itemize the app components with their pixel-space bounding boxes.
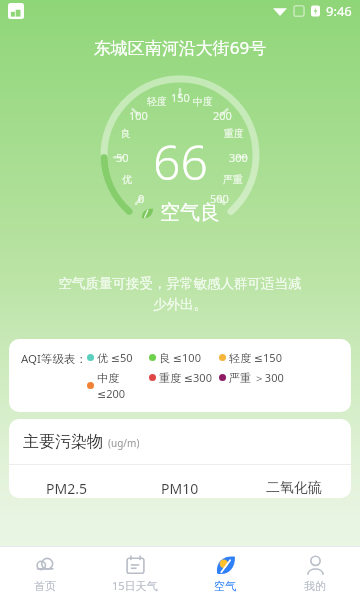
button[interactable]: 我的 — [270, 547, 360, 600]
staticText: PM2.5 — [46, 479, 87, 498]
staticText: 良 — [121, 127, 131, 140]
staticText: 空气良 — [160, 200, 220, 225]
staticText: 严重 — [223, 173, 243, 186]
staticText: 500 — [210, 191, 229, 206]
staticText: 首页 — [34, 579, 56, 593]
staticText: 0 — [138, 191, 145, 206]
staticText: 空气质量可接受，异常敏感人群可适当减 少外出。 — [24, 275, 336, 313]
button[interactable]: 主要污染物 — [9, 419, 351, 498]
button[interactable]: 首页 — [0, 547, 90, 600]
staticText: PM10 — [161, 479, 199, 498]
staticText: 二氧化硫 — [266, 479, 322, 497]
staticText: 300 — [229, 150, 248, 165]
staticText: AQI等级表： — [21, 351, 87, 367]
staticText: 轻度 — [147, 95, 167, 108]
staticText: 轻度 ≤150 — [229, 350, 282, 365]
button[interactable]: 空气 — [180, 547, 270, 600]
staticText: 中度 ≤200 — [97, 370, 149, 401]
staticText: 空气 — [214, 579, 236, 593]
staticText: 重度 — [224, 127, 244, 140]
staticText: 100 — [129, 108, 148, 123]
staticText: 优 ≤50 — [97, 350, 133, 365]
staticText: 东城区南河沿大街69号 — [0, 36, 360, 59]
button[interactable]: AQI等级表： — [9, 339, 351, 412]
button[interactable]: 15日天气 — [90, 547, 180, 600]
staticText: 50 — [116, 150, 129, 165]
staticText: 150 — [171, 90, 190, 105]
staticText: 中度 — [193, 95, 213, 108]
staticText: (ug/m) — [108, 436, 140, 450]
staticText: 9:46 — [326, 2, 352, 20]
staticText: 重度 ≤300 — [159, 370, 212, 385]
staticText: 200 — [213, 108, 232, 123]
staticText: 严重 ＞300 — [229, 370, 284, 385]
staticText: 66 — [153, 129, 208, 194]
staticText: 良 ≤100 — [159, 350, 201, 365]
staticText: 我的 — [304, 579, 326, 593]
staticText: 优 — [122, 173, 132, 186]
staticText: 15日天气 — [112, 578, 158, 593]
staticText: 主要污染物 — [23, 432, 103, 452]
